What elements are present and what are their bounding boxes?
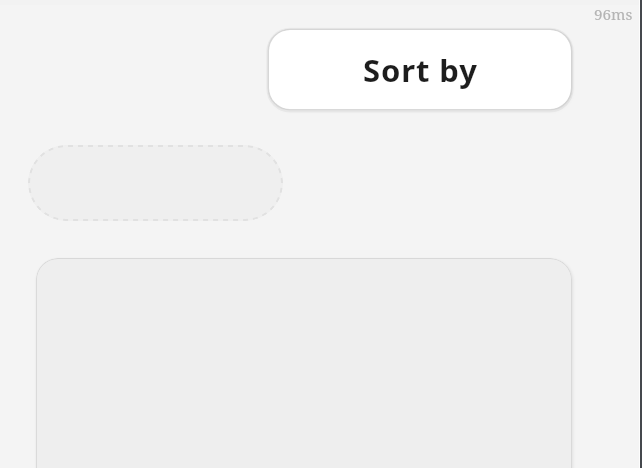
button[interactable]: Sort by xyxy=(269,30,571,109)
staticText: 96ms xyxy=(594,4,633,25)
staticText: Sort by xyxy=(363,49,478,91)
